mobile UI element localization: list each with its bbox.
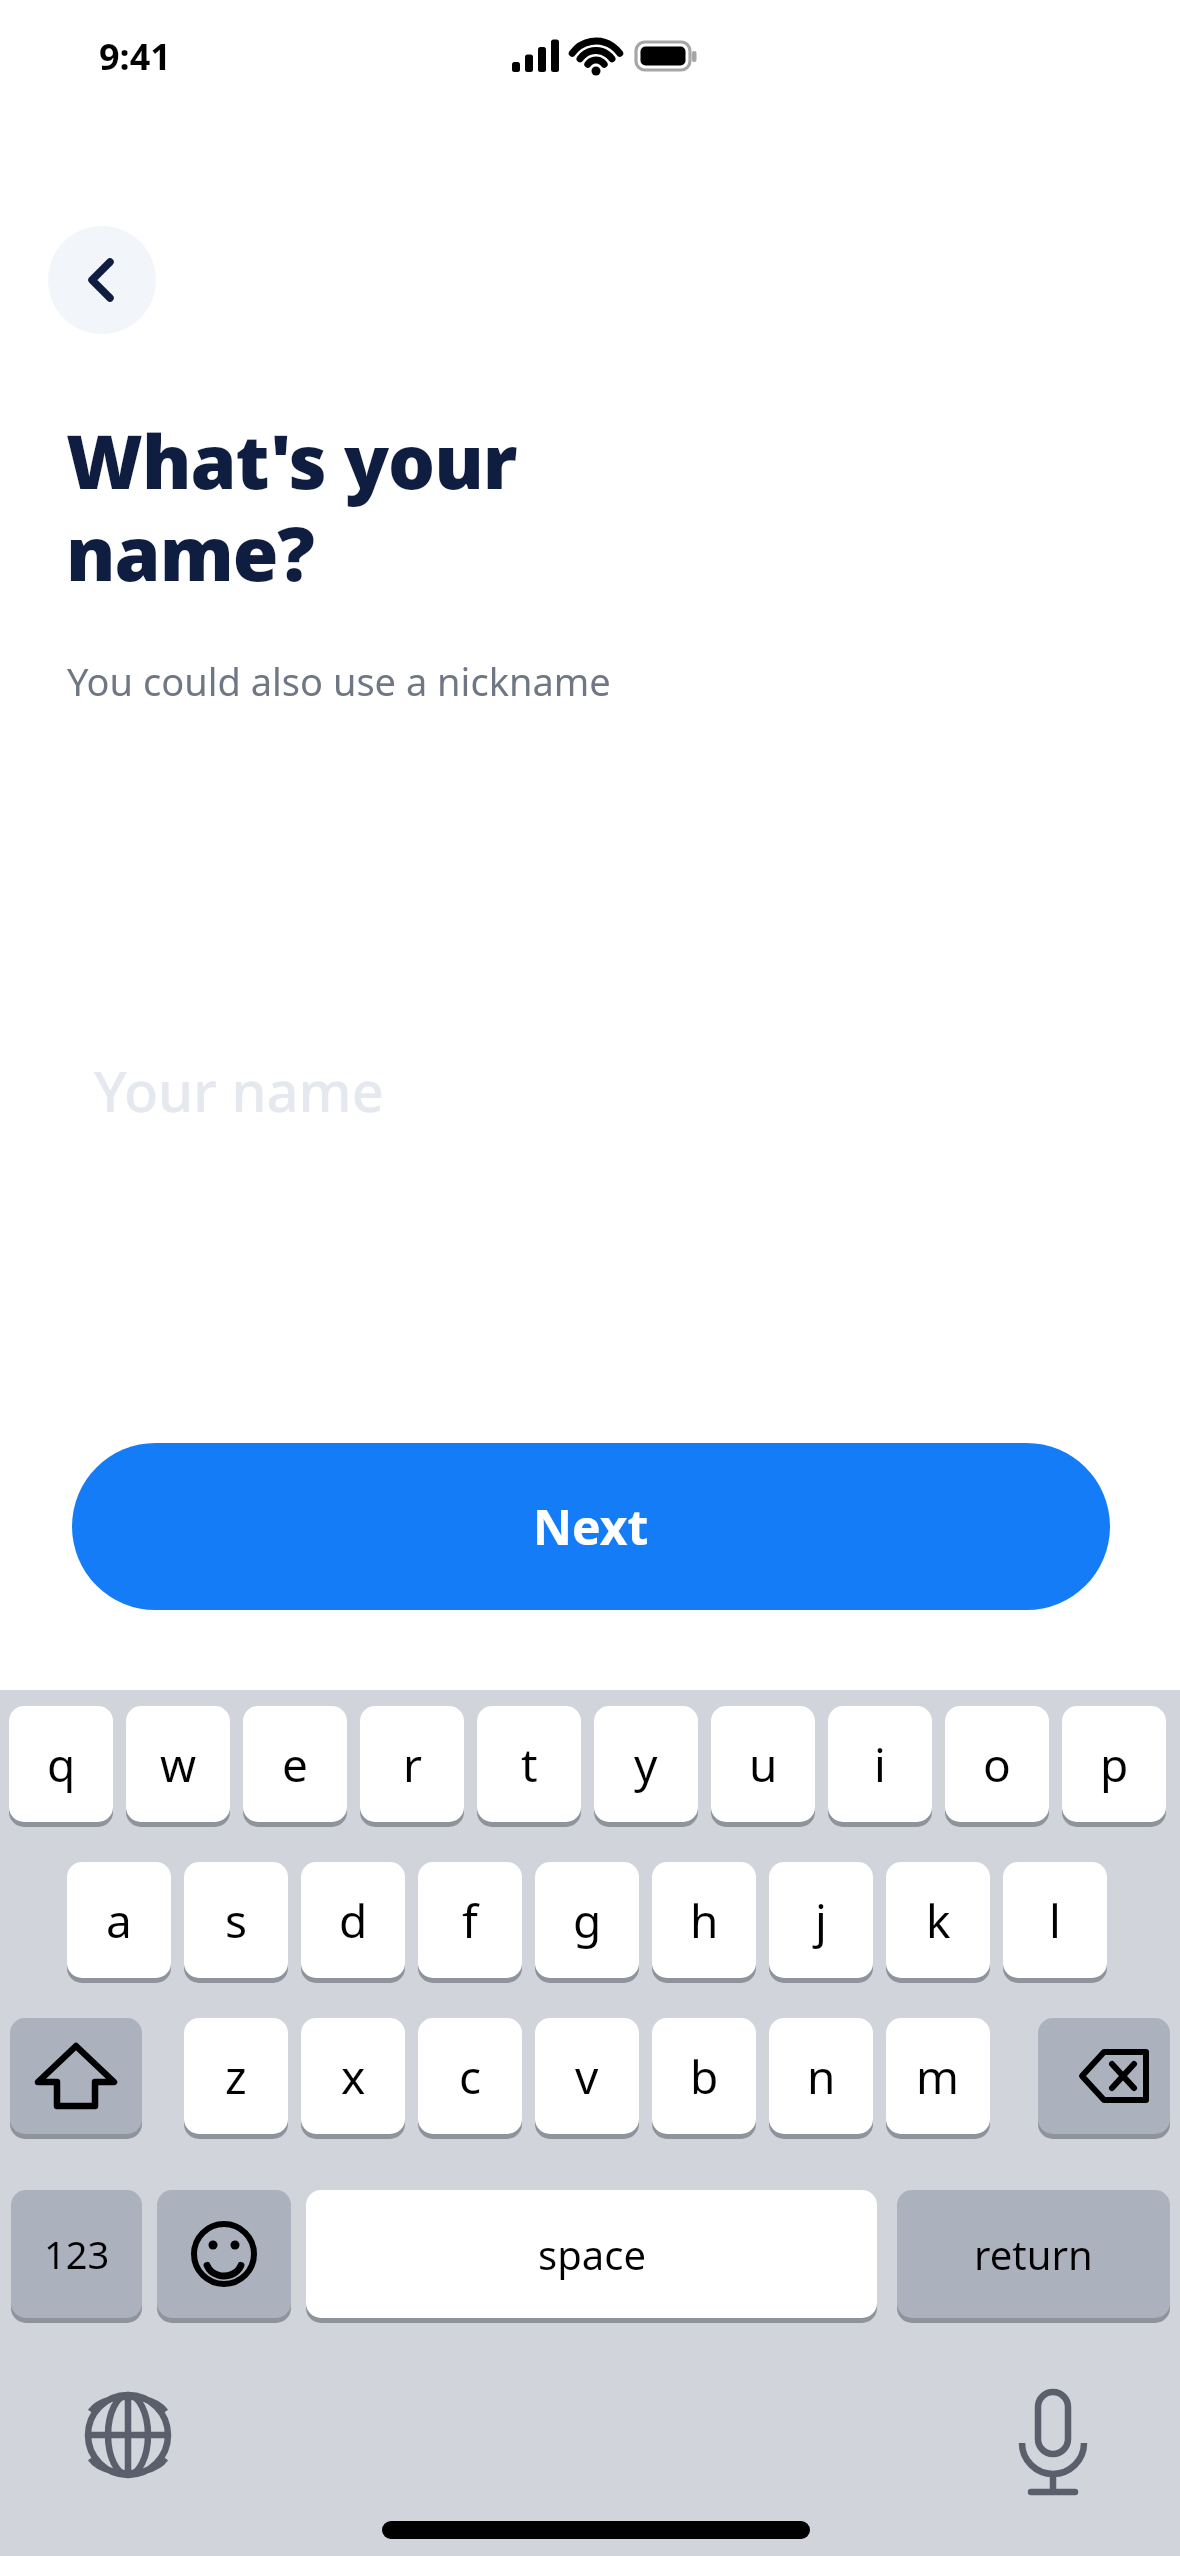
- button[interactable]: z: [184, 2018, 288, 2134]
- button[interactable]: 123: [11, 2190, 142, 2318]
- staticText: l: [1049, 1889, 1061, 1952]
- button[interactable]: c: [418, 2018, 522, 2134]
- staticText: o: [983, 1733, 1011, 1796]
- staticText: w: [160, 1733, 197, 1796]
- button[interactable]: j: [769, 1862, 873, 1978]
- staticText: Next: [533, 1494, 649, 1559]
- button[interactable]: Change keyboard: [60, 2370, 196, 2506]
- button[interactable]: u: [711, 1706, 815, 1822]
- staticText: g: [573, 1889, 602, 1952]
- staticText: You could also use a nickname: [67, 655, 611, 707]
- button[interactable]: Shift: [10, 2018, 142, 2134]
- button[interactable]: e: [243, 1706, 347, 1822]
- staticText: x: [341, 2045, 366, 2108]
- staticText: What's your name?: [66, 410, 517, 603]
- staticText: n: [807, 2045, 836, 2108]
- button[interactable]: d: [301, 1862, 405, 1978]
- staticText: m: [916, 2045, 960, 2108]
- button[interactable]: k: [886, 1862, 990, 1978]
- staticText: q: [47, 1733, 76, 1796]
- button[interactable]: r: [360, 1706, 464, 1822]
- staticText: return: [974, 2227, 1093, 2281]
- button[interactable]: Backspace: [1038, 2018, 1170, 2134]
- staticText: z: [225, 2045, 247, 2108]
- staticText: t: [521, 1733, 538, 1796]
- staticText: k: [926, 1889, 951, 1952]
- button[interactable]: l: [1003, 1862, 1107, 1978]
- staticText: c: [459, 2045, 482, 2108]
- button[interactable]: w: [126, 1706, 230, 1822]
- staticText: f: [462, 1889, 478, 1952]
- staticText: a: [106, 1889, 132, 1952]
- button[interactable]: b: [652, 2018, 756, 2134]
- button[interactable]: g: [535, 1862, 639, 1978]
- button[interactable]: o: [945, 1706, 1049, 1822]
- button[interactable]: return: [897, 2190, 1170, 2318]
- button[interactable]: h: [652, 1862, 756, 1978]
- button[interactable]: t: [477, 1706, 581, 1822]
- button[interactable]: space: [306, 2190, 877, 2318]
- button[interactable]: a: [67, 1862, 171, 1978]
- button[interactable]: y: [594, 1706, 698, 1822]
- button[interactable]: p: [1062, 1706, 1166, 1822]
- staticText: y: [634, 1733, 658, 1796]
- staticText: 9:41: [99, 32, 171, 81]
- staticText: p: [1100, 1733, 1129, 1796]
- button[interactable]: Emoji: [157, 2190, 291, 2318]
- button[interactable]: m: [886, 2018, 990, 2134]
- staticText: Your name: [94, 1052, 384, 1128]
- staticText: 123: [44, 2228, 110, 2280]
- button[interactable]: s: [184, 1862, 288, 1978]
- button[interactable]: Dictation: [986, 2370, 1116, 2500]
- staticText: e: [282, 1733, 308, 1796]
- staticText: b: [690, 2045, 719, 2108]
- staticText: j: [815, 1889, 827, 1952]
- button[interactable]: i: [828, 1706, 932, 1822]
- staticText: u: [749, 1733, 778, 1796]
- staticText: space: [538, 2227, 646, 2281]
- staticText: v: [575, 2045, 599, 2108]
- button[interactable]: v: [535, 2018, 639, 2134]
- staticText: d: [339, 1889, 368, 1952]
- staticText: i: [874, 1733, 886, 1796]
- staticText: r: [403, 1733, 422, 1796]
- button[interactable]: f: [418, 1862, 522, 1978]
- staticText: h: [690, 1889, 719, 1952]
- button[interactable]: q: [9, 1706, 113, 1822]
- button[interactable]: Next: [72, 1443, 1110, 1610]
- button[interactable]: Back: [48, 226, 156, 334]
- button[interactable]: Your name: [66, 1020, 1116, 1160]
- button[interactable]: x: [301, 2018, 405, 2134]
- staticText: s: [225, 1889, 248, 1952]
- button[interactable]: n: [769, 2018, 873, 2134]
